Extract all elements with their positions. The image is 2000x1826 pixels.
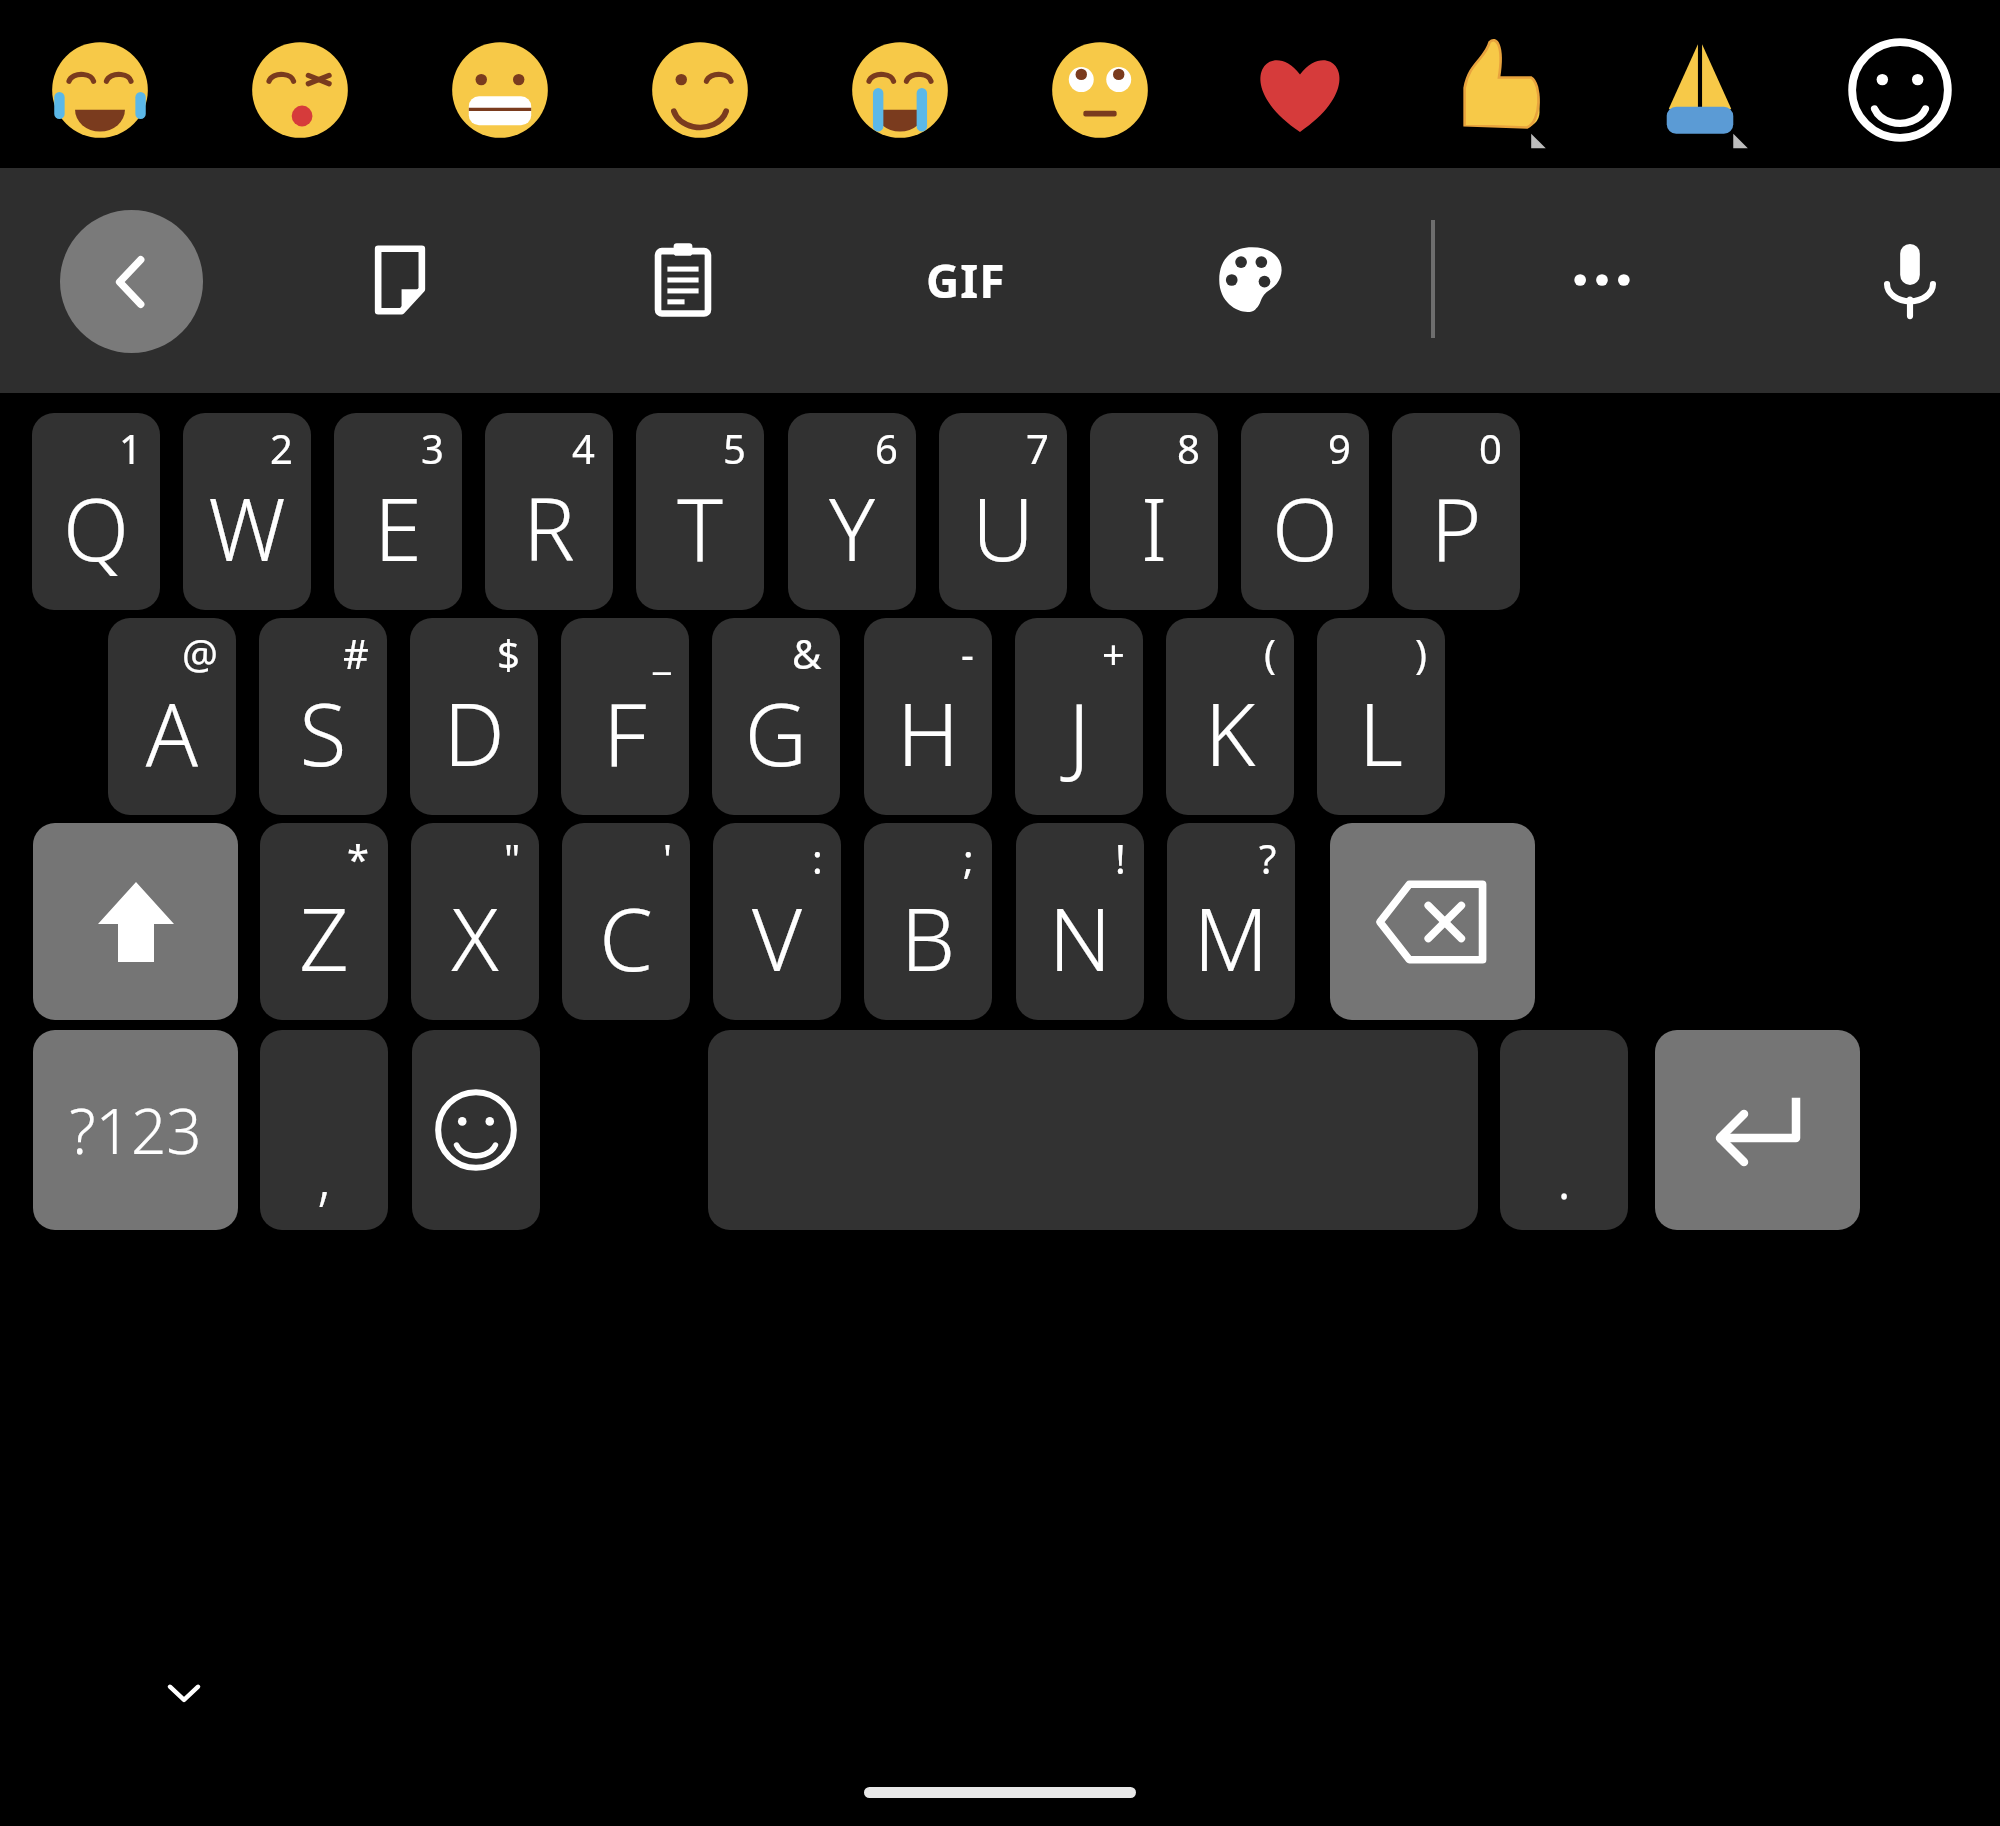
button[interactable]: @	[108, 618, 236, 815]
staticText: X	[411, 879, 539, 996]
button[interactable]: (	[1166, 618, 1294, 815]
button[interactable]: GIF	[894, 208, 1038, 352]
staticText: V	[713, 879, 841, 996]
staticText: O	[1241, 469, 1369, 586]
staticText: ?123	[33, 1088, 238, 1172]
staticText: K	[1166, 674, 1294, 791]
staticText: I	[1090, 469, 1218, 586]
staticText: D	[410, 674, 538, 791]
staticText: -	[961, 626, 974, 680]
staticText: G	[712, 674, 840, 791]
staticText: &	[792, 626, 822, 680]
staticText: 3	[421, 421, 444, 475]
button[interactable]: Voice input	[1838, 208, 1982, 352]
staticText: +	[1102, 626, 1125, 680]
button[interactable]: Clipboard	[611, 208, 755, 352]
button[interactable]: 1	[32, 413, 160, 610]
staticText: T	[636, 469, 764, 586]
staticText: Y	[788, 469, 916, 586]
staticText: !	[1115, 831, 1126, 885]
button[interactable]: 5	[636, 413, 764, 610]
staticText: @	[182, 626, 218, 680]
staticText: A	[108, 674, 236, 791]
button[interactable]: &	[712, 618, 840, 815]
staticText: F	[561, 674, 689, 791]
button[interactable]: Hide keyboard	[148, 1656, 220, 1728]
staticText: Z	[260, 879, 388, 996]
staticText: S	[259, 674, 387, 791]
button[interactable]: Red heart	[1222, 12, 1378, 168]
button[interactable]: 3	[334, 413, 462, 610]
button[interactable]: Grinning face	[422, 12, 578, 168]
button[interactable]: Face blowing a kiss	[222, 12, 378, 168]
staticText: '	[663, 831, 672, 885]
button[interactable]: Thumbs up	[1422, 12, 1578, 168]
staticText: H	[864, 674, 992, 791]
staticText: B	[864, 879, 992, 996]
button[interactable]: $	[410, 618, 538, 815]
button[interactable]: *	[260, 823, 388, 1020]
staticText: (	[1264, 626, 1276, 680]
staticText: ;	[963, 831, 974, 885]
button[interactable]: More options	[1530, 208, 1674, 352]
button[interactable]: '	[562, 823, 690, 1020]
button[interactable]: -	[864, 618, 992, 815]
button[interactable]: 7	[939, 413, 1067, 610]
button[interactable]: Emoji	[412, 1030, 540, 1230]
staticText: "	[504, 831, 521, 885]
staticText: 5	[723, 421, 746, 475]
staticText: ,	[260, 1135, 388, 1217]
staticText: #	[343, 626, 369, 680]
staticText: GIF	[926, 249, 1006, 312]
button[interactable]: :	[713, 823, 841, 1020]
button[interactable]: #	[259, 618, 387, 815]
staticText: 0	[1479, 421, 1502, 475]
button[interactable]: ?	[1167, 823, 1295, 1020]
staticText: 4	[572, 421, 595, 475]
button[interactable]: Folded hands	[1622, 12, 1778, 168]
staticText: N	[1016, 879, 1144, 996]
button[interactable]: )	[1317, 618, 1445, 815]
button[interactable]: 8	[1090, 413, 1218, 610]
button[interactable]: 6	[788, 413, 916, 610]
staticText: W	[183, 469, 311, 586]
staticText: 6	[875, 421, 898, 475]
button[interactable]: Shift	[33, 823, 238, 1020]
button[interactable]: 0	[1392, 413, 1520, 610]
button[interactable]: Winking face	[622, 12, 778, 168]
button[interactable]: 2	[183, 413, 311, 610]
staticText: _	[653, 626, 671, 680]
button[interactable]: +	[1015, 618, 1143, 815]
button[interactable]: !	[1016, 823, 1144, 1020]
button[interactable]: Enter	[1655, 1030, 1860, 1230]
staticText: 9	[1328, 421, 1351, 475]
button[interactable]: Backspace	[1330, 823, 1535, 1020]
staticText: $	[497, 626, 520, 680]
staticText: E	[334, 469, 462, 586]
button[interactable]: Face with tears of joy	[22, 12, 178, 168]
button[interactable]: Period	[1500, 1030, 1628, 1230]
staticText: .	[1500, 1135, 1628, 1217]
button[interactable]: Sticker	[328, 208, 472, 352]
button[interactable]: 9	[1241, 413, 1369, 610]
button[interactable]: ;	[864, 823, 992, 1020]
button[interactable]: Theme	[1180, 208, 1324, 352]
staticText: 1	[119, 421, 142, 475]
staticText: P	[1392, 469, 1520, 586]
staticText: C	[562, 879, 690, 996]
button[interactable]: _	[561, 618, 689, 815]
button[interactable]: "	[411, 823, 539, 1020]
button[interactable]: 4	[485, 413, 613, 610]
staticText: M	[1167, 879, 1295, 996]
button[interactable]: Back	[60, 210, 203, 353]
staticText: 8	[1177, 421, 1200, 475]
button[interactable]: Open emoji picker	[1822, 12, 1978, 168]
button[interactable]: Comma	[260, 1030, 388, 1230]
button[interactable]: Face with rolling eyes	[1022, 12, 1178, 168]
button[interactable]: Loudly crying face	[822, 12, 978, 168]
button[interactable]: ?123	[33, 1030, 238, 1230]
staticText: Q	[32, 469, 160, 586]
staticText: J	[1015, 674, 1143, 791]
staticText: )	[1415, 626, 1427, 680]
